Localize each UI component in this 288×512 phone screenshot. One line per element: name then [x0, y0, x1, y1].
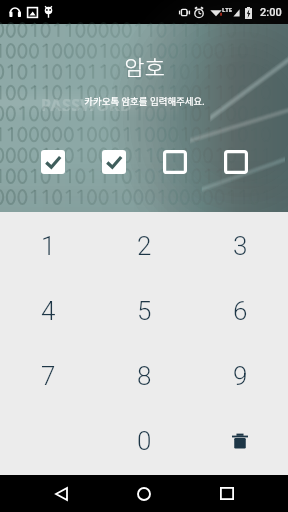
staticText: 3: [233, 231, 248, 261]
staticText: 6: [233, 296, 248, 326]
button[interactable]: 6: [192, 278, 288, 343]
button[interactable]: 0: [96, 408, 192, 473]
button[interactable]: 5: [96, 278, 192, 343]
staticText: 9: [233, 361, 248, 391]
button[interactable]: 1: [0, 213, 96, 278]
staticText: LTE: [222, 6, 233, 14]
button[interactable]: 4: [0, 278, 96, 343]
button[interactable]: 9: [192, 343, 288, 408]
button[interactable]: 8: [96, 343, 192, 408]
button[interactable]: Home: [124, 475, 164, 512]
staticText: PASSWORD: [41, 94, 133, 116]
staticText: 7: [41, 361, 56, 391]
button[interactable]: 2: [96, 213, 192, 278]
button[interactable]: 7: [0, 343, 96, 408]
button[interactable]: Back: [41, 475, 81, 512]
button[interactable]: Recents: [207, 475, 247, 512]
staticText: 2:00: [260, 6, 282, 19]
staticText: 4: [41, 296, 56, 326]
staticText: 5: [137, 296, 152, 326]
staticText: 8: [137, 361, 152, 391]
staticText: 0: [137, 426, 152, 456]
staticText: 암호: [124, 50, 165, 82]
staticText: 카카오톡 암호를 입력해주세요.: [84, 94, 205, 108]
button[interactable]: Delete: [192, 408, 288, 473]
button[interactable]: 3: [192, 213, 288, 278]
staticText: 2: [137, 231, 152, 261]
staticText: 1: [41, 231, 56, 261]
